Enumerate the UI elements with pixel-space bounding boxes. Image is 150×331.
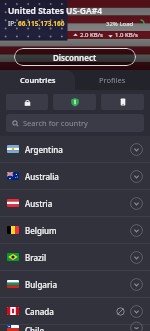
staticText: 2.0 KB/s: [80, 31, 103, 39]
staticText: Profiles: [99, 75, 126, 85]
button[interactable]: Search for country: [6, 114, 144, 132]
staticText: 66.115.173.166: [18, 19, 65, 28]
button[interactable]: Disconnect: [14, 48, 136, 66]
button[interactable]: Argentina: [0, 136, 150, 162]
staticText: Australia: [25, 171, 59, 182]
staticText: Canada: [25, 306, 54, 317]
staticText: IP:: [8, 19, 16, 28]
staticText: Austria: [25, 198, 53, 209]
button[interactable]: Bulgaria: [0, 271, 150, 297]
button[interactable]: Countries: [0, 70, 75, 90]
button[interactable]: Protection shield: [53, 94, 96, 110]
staticText: Brazil: [25, 252, 47, 263]
staticText: Search for country: [23, 118, 88, 128]
button[interactable]: Profiles: [75, 70, 150, 90]
staticText: Disconnect: [53, 52, 97, 63]
staticText: Belgium: [25, 225, 57, 236]
staticText: 1.0 KB/s: [115, 31, 138, 39]
button[interactable]: Device settings: [101, 94, 144, 110]
button[interactable]: Belgium: [0, 217, 150, 243]
staticText: Argentina: [25, 144, 63, 155]
staticText: Chile: [25, 325, 45, 331]
button[interactable]: Lock connection: [6, 94, 48, 110]
button[interactable]: Chile: [0, 325, 150, 331]
button[interactable]: Australia: [0, 163, 150, 189]
button[interactable]: Canada: [0, 298, 150, 324]
staticText: 32% Load: [106, 20, 134, 28]
button[interactable]: Brazil: [0, 244, 150, 270]
staticText: Bulgaria: [25, 279, 58, 290]
button[interactable]: Austria: [0, 190, 150, 216]
staticText: Countries: [20, 75, 56, 85]
staticText: United States US-GA#4: [8, 5, 103, 17]
